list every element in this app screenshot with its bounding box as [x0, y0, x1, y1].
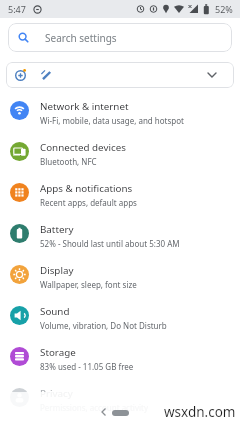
staticText: 52% — [215, 3, 233, 15]
staticText: Search settings — [45, 31, 117, 45]
staticText: Volume, vibration, Do Not Disturb — [40, 320, 167, 331]
button[interactable]: Search settings — [8, 23, 232, 52]
staticText: Connected devices — [40, 141, 126, 154]
button[interactable]: Display — [0, 254, 240, 295]
button[interactable]: Battery — [0, 213, 240, 254]
staticText: Privacy — [40, 387, 73, 400]
button[interactable]: Connected devices — [0, 131, 240, 172]
button[interactable]: Storage — [0, 336, 240, 377]
button[interactable]: Network & internet — [0, 90, 240, 131]
staticText: Recent apps, default apps — [40, 197, 137, 208]
staticText: 5:47 — [8, 3, 26, 15]
button[interactable]: Apps & notifications — [0, 172, 240, 213]
staticText: Battery — [40, 223, 74, 236]
staticText: Storage — [40, 346, 76, 359]
staticText: Display — [40, 264, 74, 277]
button[interactable] — [6, 62, 234, 88]
staticText: wsxdn.com — [164, 403, 236, 421]
staticText: 83% used - 11.05 GB free — [40, 361, 134, 372]
staticText: Permissions, account activity — [40, 402, 149, 413]
button[interactable]: Sound — [0, 295, 240, 336]
staticText: Wallpaper, sleep, font size — [40, 279, 137, 290]
button[interactable] — [112, 410, 129, 416]
staticText: Wi-Fi, mobile, data usage, and hotspot — [40, 115, 184, 126]
staticText: Sound — [40, 305, 70, 318]
button[interactable]: Privacy — [0, 377, 240, 418]
staticText: Bluetooth, NFC — [40, 156, 97, 167]
staticText: Apps & notifications — [40, 182, 133, 195]
staticText: Network & internet — [40, 100, 129, 113]
staticText: 52% - Should last until about 5:30 AM — [40, 238, 180, 249]
